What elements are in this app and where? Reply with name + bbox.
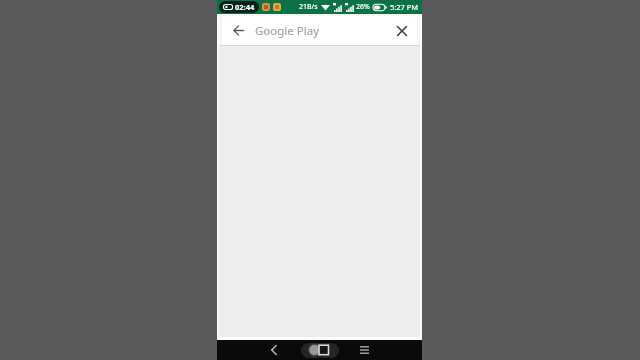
button[interactable]: Google Play [222, 16, 417, 45]
staticText: 21B/s [299, 2, 318, 12]
button[interactable] [301, 343, 339, 358]
button[interactable] [353, 340, 375, 360]
button[interactable] [263, 340, 285, 360]
staticText: 02:44 [235, 2, 255, 12]
staticText: 5:27 PM [390, 2, 419, 12]
button[interactable] [387, 16, 417, 45]
button[interactable] [222, 16, 254, 45]
staticText: 26% [356, 2, 370, 12]
staticText: Google Play [255, 23, 320, 39]
